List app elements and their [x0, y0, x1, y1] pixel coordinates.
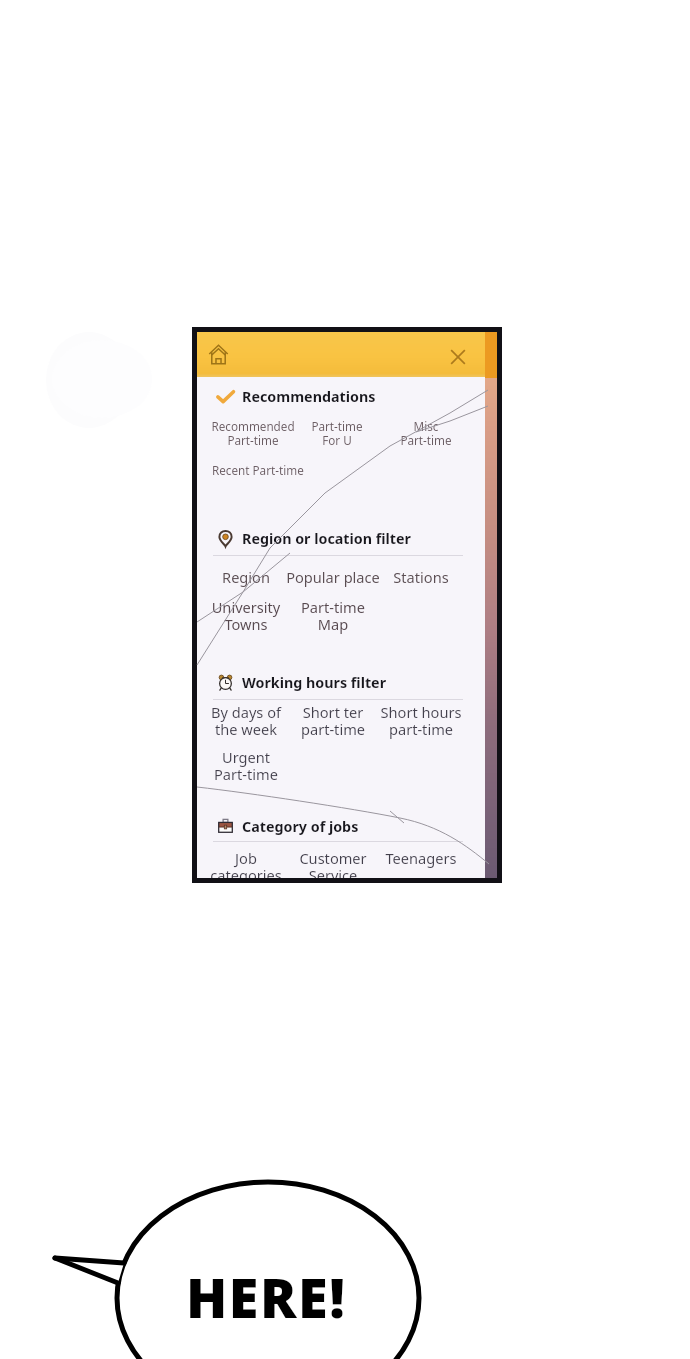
- button[interactable]: Recommendations: [217, 384, 376, 408]
- button[interactable]: Region: [197, 567, 301, 587]
- staticText: Misc Part-time: [371, 418, 481, 449]
- staticText: Popular place: [278, 567, 388, 587]
- button[interactable]: Recent Part-time: [212, 462, 322, 478]
- button[interactable]: Short hours part-time: [366, 702, 476, 739]
- staticText: Recommendations: [242, 387, 376, 406]
- button[interactable]: Region or location filter: [217, 526, 411, 550]
- button[interactable]: Part-time For U: [282, 418, 392, 449]
- button[interactable]: Teenagers: [366, 848, 476, 868]
- staticText: Stations: [366, 567, 476, 587]
- button[interactable]: Urgent Part-time: [197, 747, 301, 784]
- button[interactable]: University Towns: [197, 597, 301, 634]
- button[interactable]: Stations: [366, 567, 476, 587]
- staticText: Urgent Part-time: [197, 747, 301, 784]
- staticText: Part-time For U: [282, 418, 392, 449]
- staticText: Recent Part-time: [212, 462, 322, 478]
- button[interactable]: By days of the week: [197, 702, 301, 739]
- button[interactable]: Recommended Part-time: [198, 418, 308, 449]
- button[interactable]: Category of jobs: [217, 814, 359, 838]
- button[interactable]: Part-time Map: [278, 597, 388, 634]
- staticText: University Towns: [197, 597, 301, 634]
- staticText: Short ter part-time: [278, 702, 388, 739]
- button[interactable]: Customer Service: [278, 848, 388, 878]
- staticText: Category of jobs: [242, 817, 359, 836]
- staticText: Region or location filter: [242, 529, 411, 548]
- staticText: Customer Service: [278, 848, 388, 878]
- staticText: HERE!: [186, 1260, 347, 1334]
- button[interactable]: Short ter part-time: [278, 702, 388, 739]
- button[interactable]: Misc Part-time: [371, 418, 481, 449]
- staticText: Region: [197, 567, 301, 587]
- staticText: Working hours filter: [242, 673, 387, 692]
- staticText: Recommended Part-time: [198, 418, 308, 449]
- button[interactable]: Home: [208, 343, 229, 366]
- staticText: Job categories: [197, 848, 301, 878]
- button[interactable]: Popular place: [278, 567, 388, 587]
- staticText: Part-time Map: [278, 597, 388, 634]
- staticText: By days of the week: [197, 702, 301, 739]
- button[interactable]: Close: [449, 348, 467, 366]
- staticText: Teenagers: [366, 848, 476, 868]
- button[interactable]: Job categories: [197, 848, 301, 878]
- staticText: Short hours part-time: [366, 702, 476, 739]
- button[interactable]: Working hours filter: [217, 670, 387, 694]
